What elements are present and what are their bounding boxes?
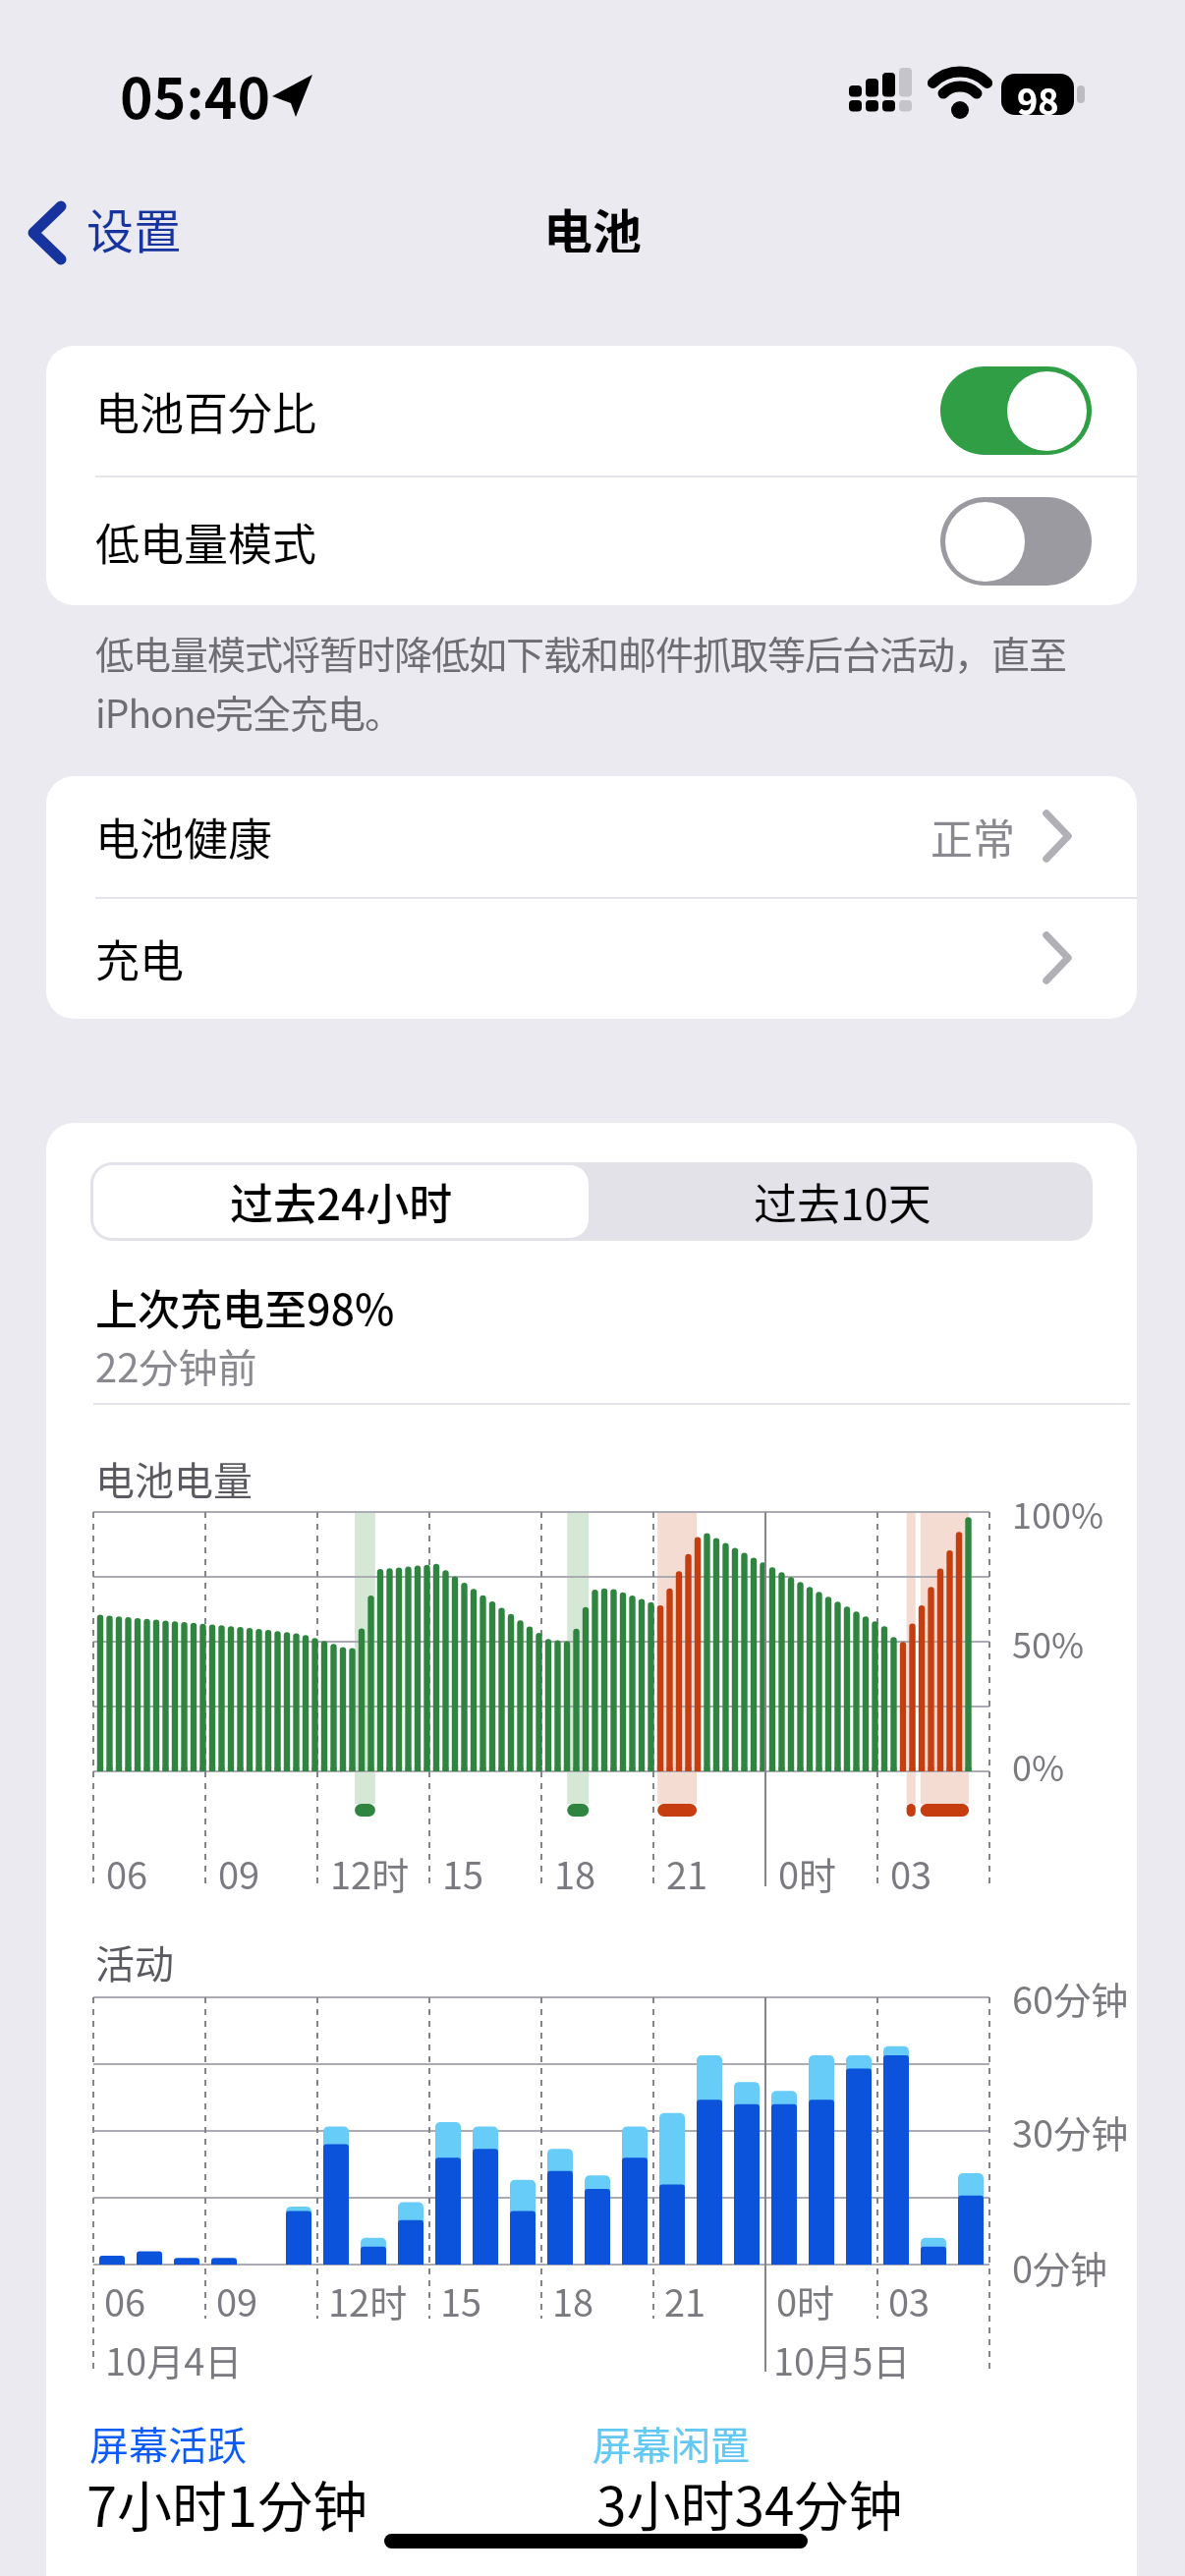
staticText: 屏幕活跃 xyxy=(89,2415,247,2472)
staticText: 12时 xyxy=(328,2273,408,2327)
button[interactable] xyxy=(20,201,197,264)
staticText: 0时 xyxy=(778,1846,837,1900)
staticText: 电池电量 xyxy=(95,1450,253,1507)
staticText: 98 xyxy=(1017,74,1059,115)
staticText: 电池健康 xyxy=(95,805,273,868)
staticText: 正常 xyxy=(931,806,1015,867)
staticText: 充电 xyxy=(95,926,185,990)
staticText: 03 xyxy=(888,2273,931,2327)
staticText: 05:40 xyxy=(120,54,271,136)
staticText: 设置 xyxy=(86,194,182,262)
staticText: 15 xyxy=(442,1846,484,1900)
staticText: 06 xyxy=(104,2273,146,2327)
staticText: 0分钟 xyxy=(1012,2240,1108,2294)
staticText: 18 xyxy=(552,2273,594,2327)
staticText: 0时 xyxy=(776,2273,835,2327)
staticText: 上次充电至98% xyxy=(95,1276,395,1337)
staticText: 屏幕闲置 xyxy=(592,2415,750,2472)
button[interactable]: 过去24小时 xyxy=(93,1165,589,1238)
staticText: 30分钟 xyxy=(1012,2104,1129,2158)
staticText: 3小时34分钟 xyxy=(596,2463,903,2542)
staticText: 10月4日 xyxy=(105,2332,243,2386)
button[interactable]: 电池百分比 xyxy=(46,346,1137,476)
staticText: 09 xyxy=(216,2273,258,2327)
staticText: 活动 xyxy=(95,1933,174,1990)
staticText: 12时 xyxy=(330,1846,410,1900)
staticText: 22分钟前 xyxy=(95,1337,257,1394)
staticText: 100% xyxy=(1012,1487,1104,1539)
staticText: 09 xyxy=(218,1846,260,1900)
button[interactable]: 低电量模式 xyxy=(46,477,1137,605)
staticText: 15 xyxy=(440,2273,482,2327)
button[interactable] xyxy=(46,776,1137,897)
staticText: 低电量模式将暂时降低如下载和邮件抓取等后台活动，直至 iPhone完全充电。 xyxy=(95,625,1067,739)
button[interactable] xyxy=(940,497,1092,586)
staticText: 06 xyxy=(106,1846,148,1900)
button[interactable] xyxy=(940,366,1092,455)
staticText: 03 xyxy=(890,1846,932,1900)
staticText: 7小时1分钟 xyxy=(86,2463,368,2543)
staticText: 电池 xyxy=(543,194,642,252)
staticText: 18 xyxy=(554,1846,596,1900)
button[interactable]: 过去10天 xyxy=(592,1162,1093,1241)
staticText: 0% xyxy=(1012,1740,1065,1791)
staticText: 10月5日 xyxy=(773,2332,911,2386)
staticText: 50% xyxy=(1012,1617,1085,1668)
staticText: 电池百分比 xyxy=(95,379,317,443)
staticText: 21 xyxy=(664,2273,706,2327)
staticText: 过去24小时 xyxy=(230,1170,453,1233)
staticText: 过去10天 xyxy=(754,1170,931,1233)
staticText: 低电量模式 xyxy=(95,510,317,574)
staticText: 60分钟 xyxy=(1012,1971,1129,2025)
button[interactable] xyxy=(46,899,1137,1019)
staticText: 21 xyxy=(666,1846,708,1900)
